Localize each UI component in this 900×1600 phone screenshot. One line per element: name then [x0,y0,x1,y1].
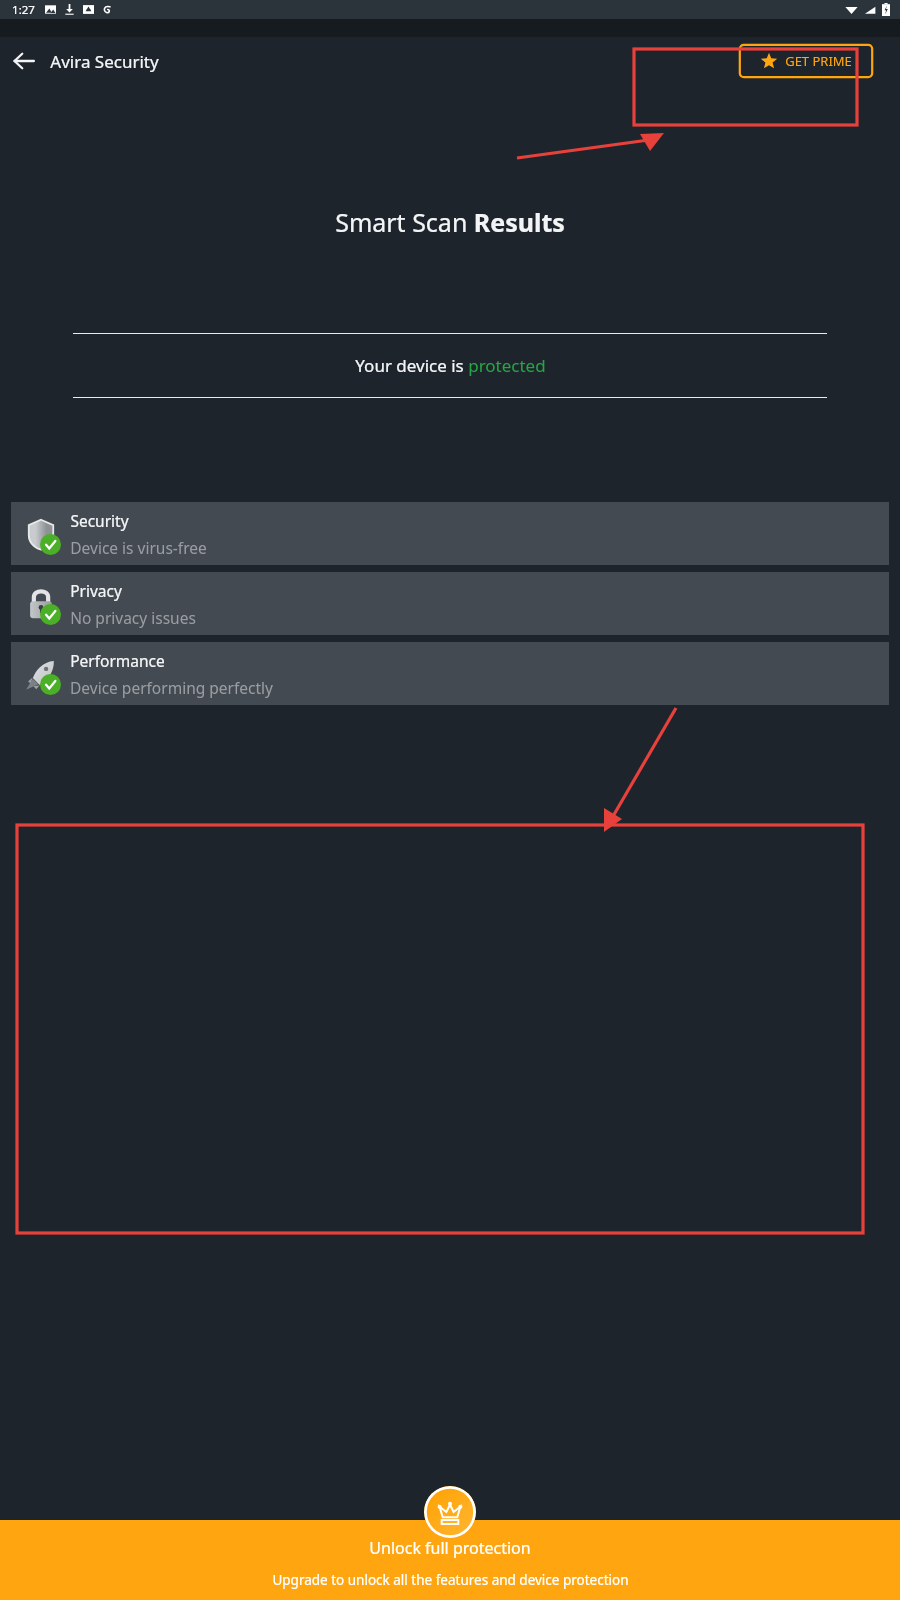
button[interactable]: Unlock full protection [0,1520,900,1600]
staticText: Upgrade to unlock all the features and d… [272,1571,629,1589]
staticText: Avira Security [50,50,159,73]
staticText: No privacy issues [70,607,196,628]
button[interactable]: Privacy [11,572,889,635]
staticText: GET PRIME [785,52,852,70]
staticText: Security [70,510,129,531]
staticText: 1:27 [12,2,35,18]
button[interactable]: Security [11,502,889,565]
staticText: Privacy [70,580,122,601]
staticText: Device is virus-free [70,537,207,558]
staticText: Unlock full protection [369,1537,531,1559]
staticText: Smart Scan Results [335,205,565,239]
button[interactable]: GET PRIME [738,43,874,79]
staticText: Device performing perfectly [70,677,273,698]
button[interactable]: Back [0,37,48,85]
button[interactable]: Unlock full protection [424,1486,476,1538]
staticText: Your device is protected [355,354,546,377]
button[interactable]: Performance [11,642,889,705]
staticText: Performance [70,650,165,671]
